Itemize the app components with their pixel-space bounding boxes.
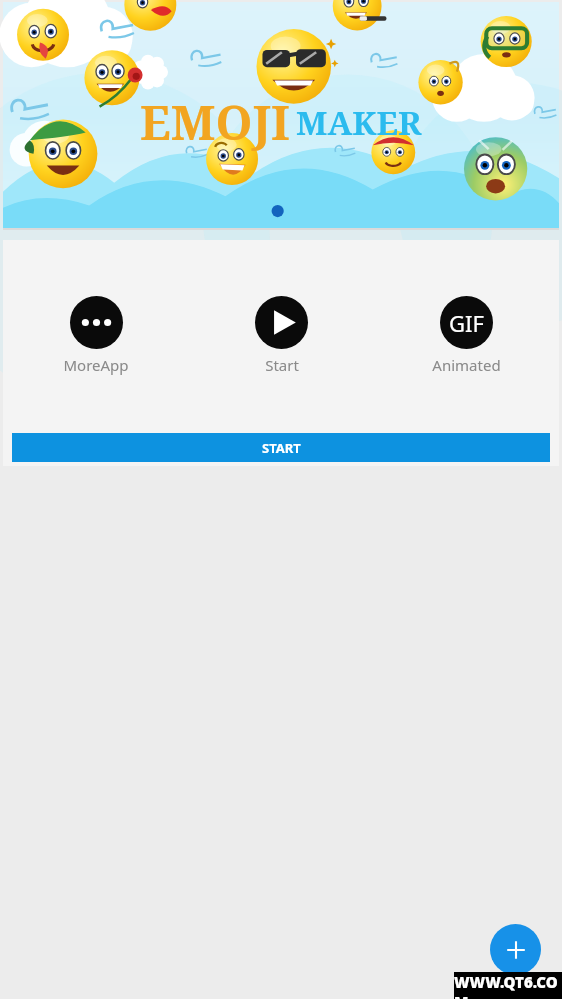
button[interactable]: Emoji Maker banner [3,2,559,228]
staticText: MoreApp [63,355,129,375]
staticText: GIF [449,308,484,338]
staticText: Start [265,355,299,375]
staticText: WWW.QT6.COM [454,972,562,999]
staticText: MAKER [296,100,422,145]
staticText: START [262,439,301,457]
button[interactable]: START [12,433,550,462]
button[interactable]: Animated GIF [428,292,505,379]
staticText: EMOJI [140,90,290,154]
button[interactable]: Add [490,924,541,975]
staticText: Animated [432,355,501,375]
button[interactable]: Start [251,292,312,379]
button[interactable]: More apps [59,292,133,379]
